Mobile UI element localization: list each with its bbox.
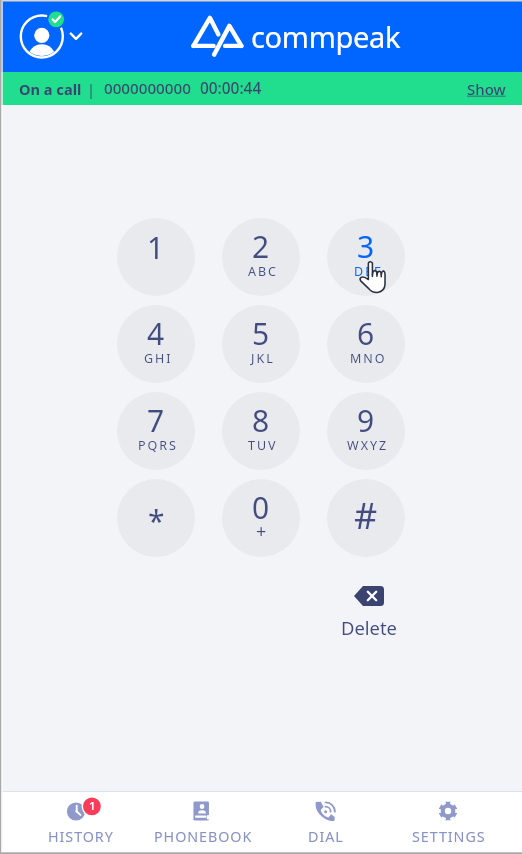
staticText: ABC bbox=[248, 263, 279, 280]
staticText: | bbox=[87, 79, 96, 99]
staticText: GHI bbox=[144, 350, 173, 367]
staticText: PQRS bbox=[138, 437, 178, 454]
button[interactable]: Phonebook bbox=[141, 791, 263, 854]
button[interactable]: History bbox=[19, 791, 141, 854]
staticText: 00:00:44 bbox=[200, 78, 262, 99]
button[interactable]: Delete bbox=[330, 586, 408, 640]
button[interactable]: 6 bbox=[327, 305, 405, 383]
staticText: + bbox=[256, 519, 267, 544]
staticText: PHONEBOOK bbox=[154, 827, 253, 846]
staticText: SETTINGS bbox=[412, 827, 486, 846]
staticText: 0000000000 bbox=[104, 78, 191, 99]
button[interactable]: Show bbox=[467, 79, 506, 99]
button[interactable]: Account bbox=[0, 6, 84, 66]
staticText: 6 bbox=[357, 313, 375, 354]
staticText: commpeak bbox=[251, 17, 401, 56]
staticText: MNO bbox=[350, 350, 387, 367]
staticText: 0 bbox=[252, 487, 270, 528]
button[interactable]: 4 bbox=[117, 305, 195, 383]
button[interactable]: 9 bbox=[327, 392, 405, 470]
button[interactable]: 3 bbox=[327, 218, 405, 296]
staticText: JKL bbox=[251, 350, 275, 367]
button[interactable]: 7 bbox=[117, 392, 195, 470]
staticText: 1 bbox=[147, 227, 165, 268]
button[interactable]: Settings bbox=[386, 791, 509, 854]
staticText: On a call bbox=[19, 79, 82, 99]
button[interactable]: 2 bbox=[222, 218, 300, 296]
button[interactable]: # bbox=[327, 479, 405, 557]
staticText: HISTORY bbox=[48, 827, 114, 846]
staticText: WXYZ bbox=[347, 437, 389, 454]
button[interactable]: * bbox=[117, 479, 195, 557]
staticText: TUV bbox=[248, 437, 278, 454]
button[interactable]: 5 bbox=[222, 305, 300, 383]
staticText: 9 bbox=[357, 400, 375, 441]
staticText: DIAL bbox=[308, 827, 344, 846]
staticText: 4 bbox=[147, 313, 165, 354]
button[interactable]: 1 bbox=[117, 218, 195, 296]
button[interactable]: Dial bbox=[263, 791, 386, 854]
staticText: # bbox=[354, 491, 378, 540]
staticText: Delete bbox=[341, 615, 397, 640]
staticText: 5 bbox=[252, 313, 270, 354]
staticText: 2 bbox=[252, 226, 270, 267]
button[interactable]: 0 bbox=[222, 479, 300, 557]
staticText: 3 bbox=[357, 226, 375, 267]
staticText: Show bbox=[467, 79, 506, 99]
staticText: 1 bbox=[89, 798, 96, 814]
staticText: 7 bbox=[147, 400, 165, 441]
staticText: 8 bbox=[252, 400, 270, 441]
button[interactable]: 8 bbox=[222, 392, 300, 470]
staticText: DEF bbox=[354, 263, 383, 280]
staticText: * bbox=[148, 500, 165, 541]
